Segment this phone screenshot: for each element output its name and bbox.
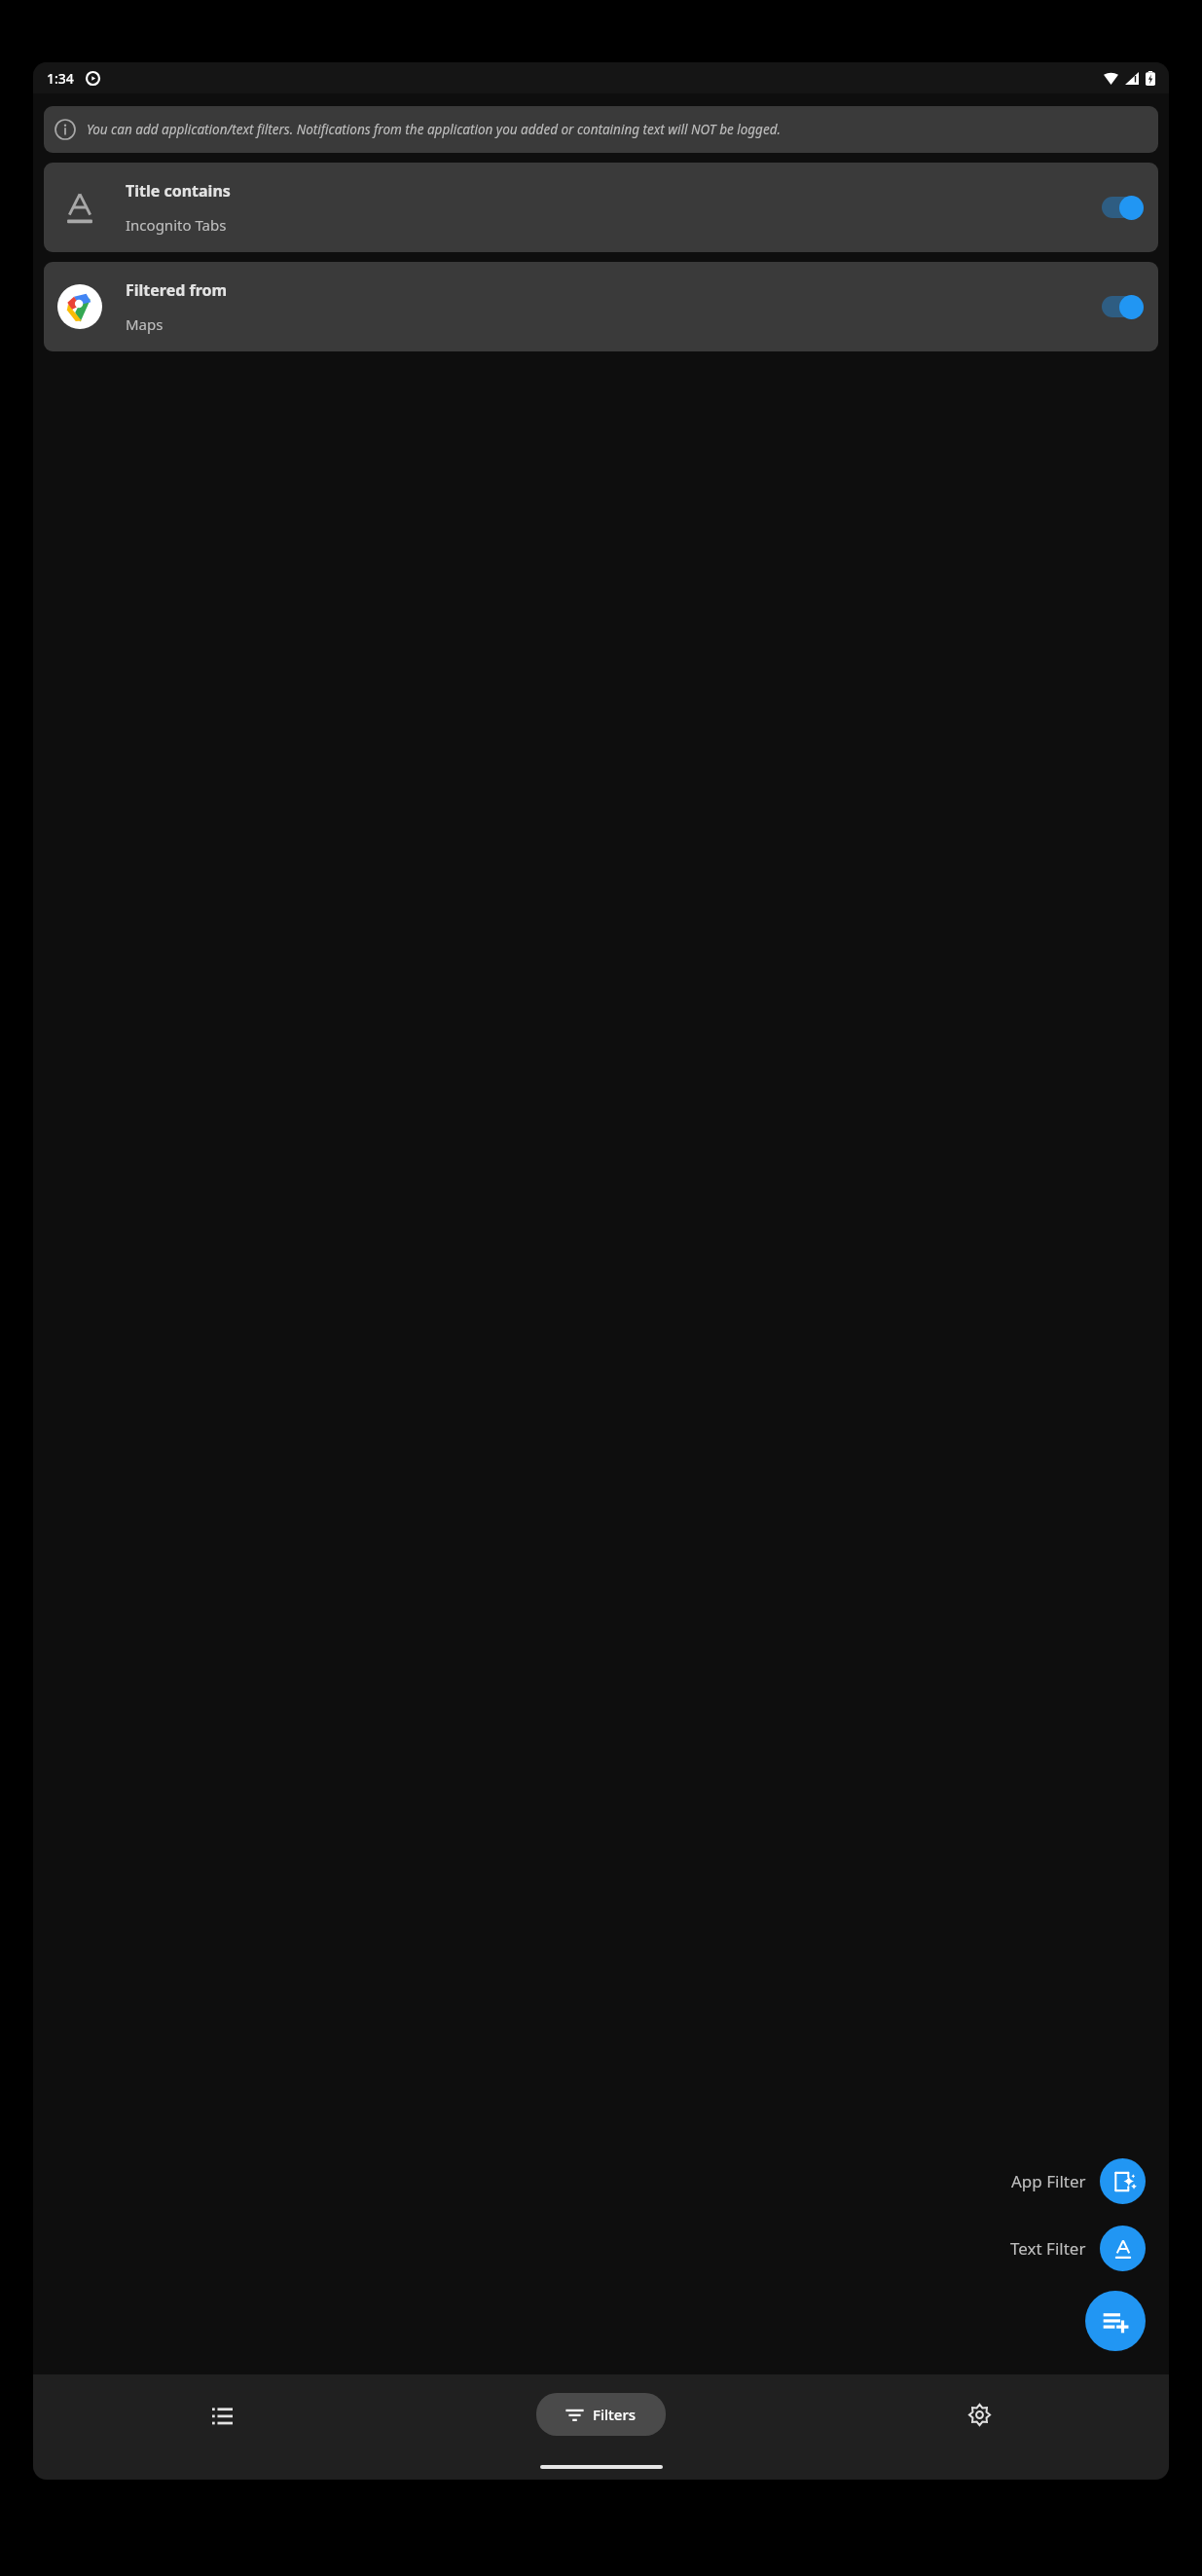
staticText: 1:34 [47,69,74,88]
button[interactable]: Filters [536,2393,666,2436]
staticText: Filters [593,2405,637,2424]
button[interactable]: App Filter [1100,2158,1146,2204]
staticText: Incognito Tabs [126,215,227,235]
staticText: Maps [126,314,164,334]
button[interactable]: Settings [790,2374,1169,2454]
button[interactable]: Text Filter [1010,2237,1086,2260]
button[interactable]: You can add application/text filters. No… [44,106,1158,153]
staticText: Title contains [126,180,231,202]
button[interactable] [1100,294,1145,319]
button[interactable]: Text Filter [1100,2226,1146,2271]
button[interactable]: Filtered from [44,262,1158,351]
staticText: You can add application/text filters. No… [87,121,781,138]
button[interactable]: List [33,2374,412,2454]
button[interactable]: Title contains [44,163,1158,252]
button[interactable] [1100,195,1145,220]
staticText: Filtered from [126,279,228,301]
button[interactable]: Add filter [1085,2291,1146,2351]
button[interactable]: App Filter [1011,2170,1086,2192]
